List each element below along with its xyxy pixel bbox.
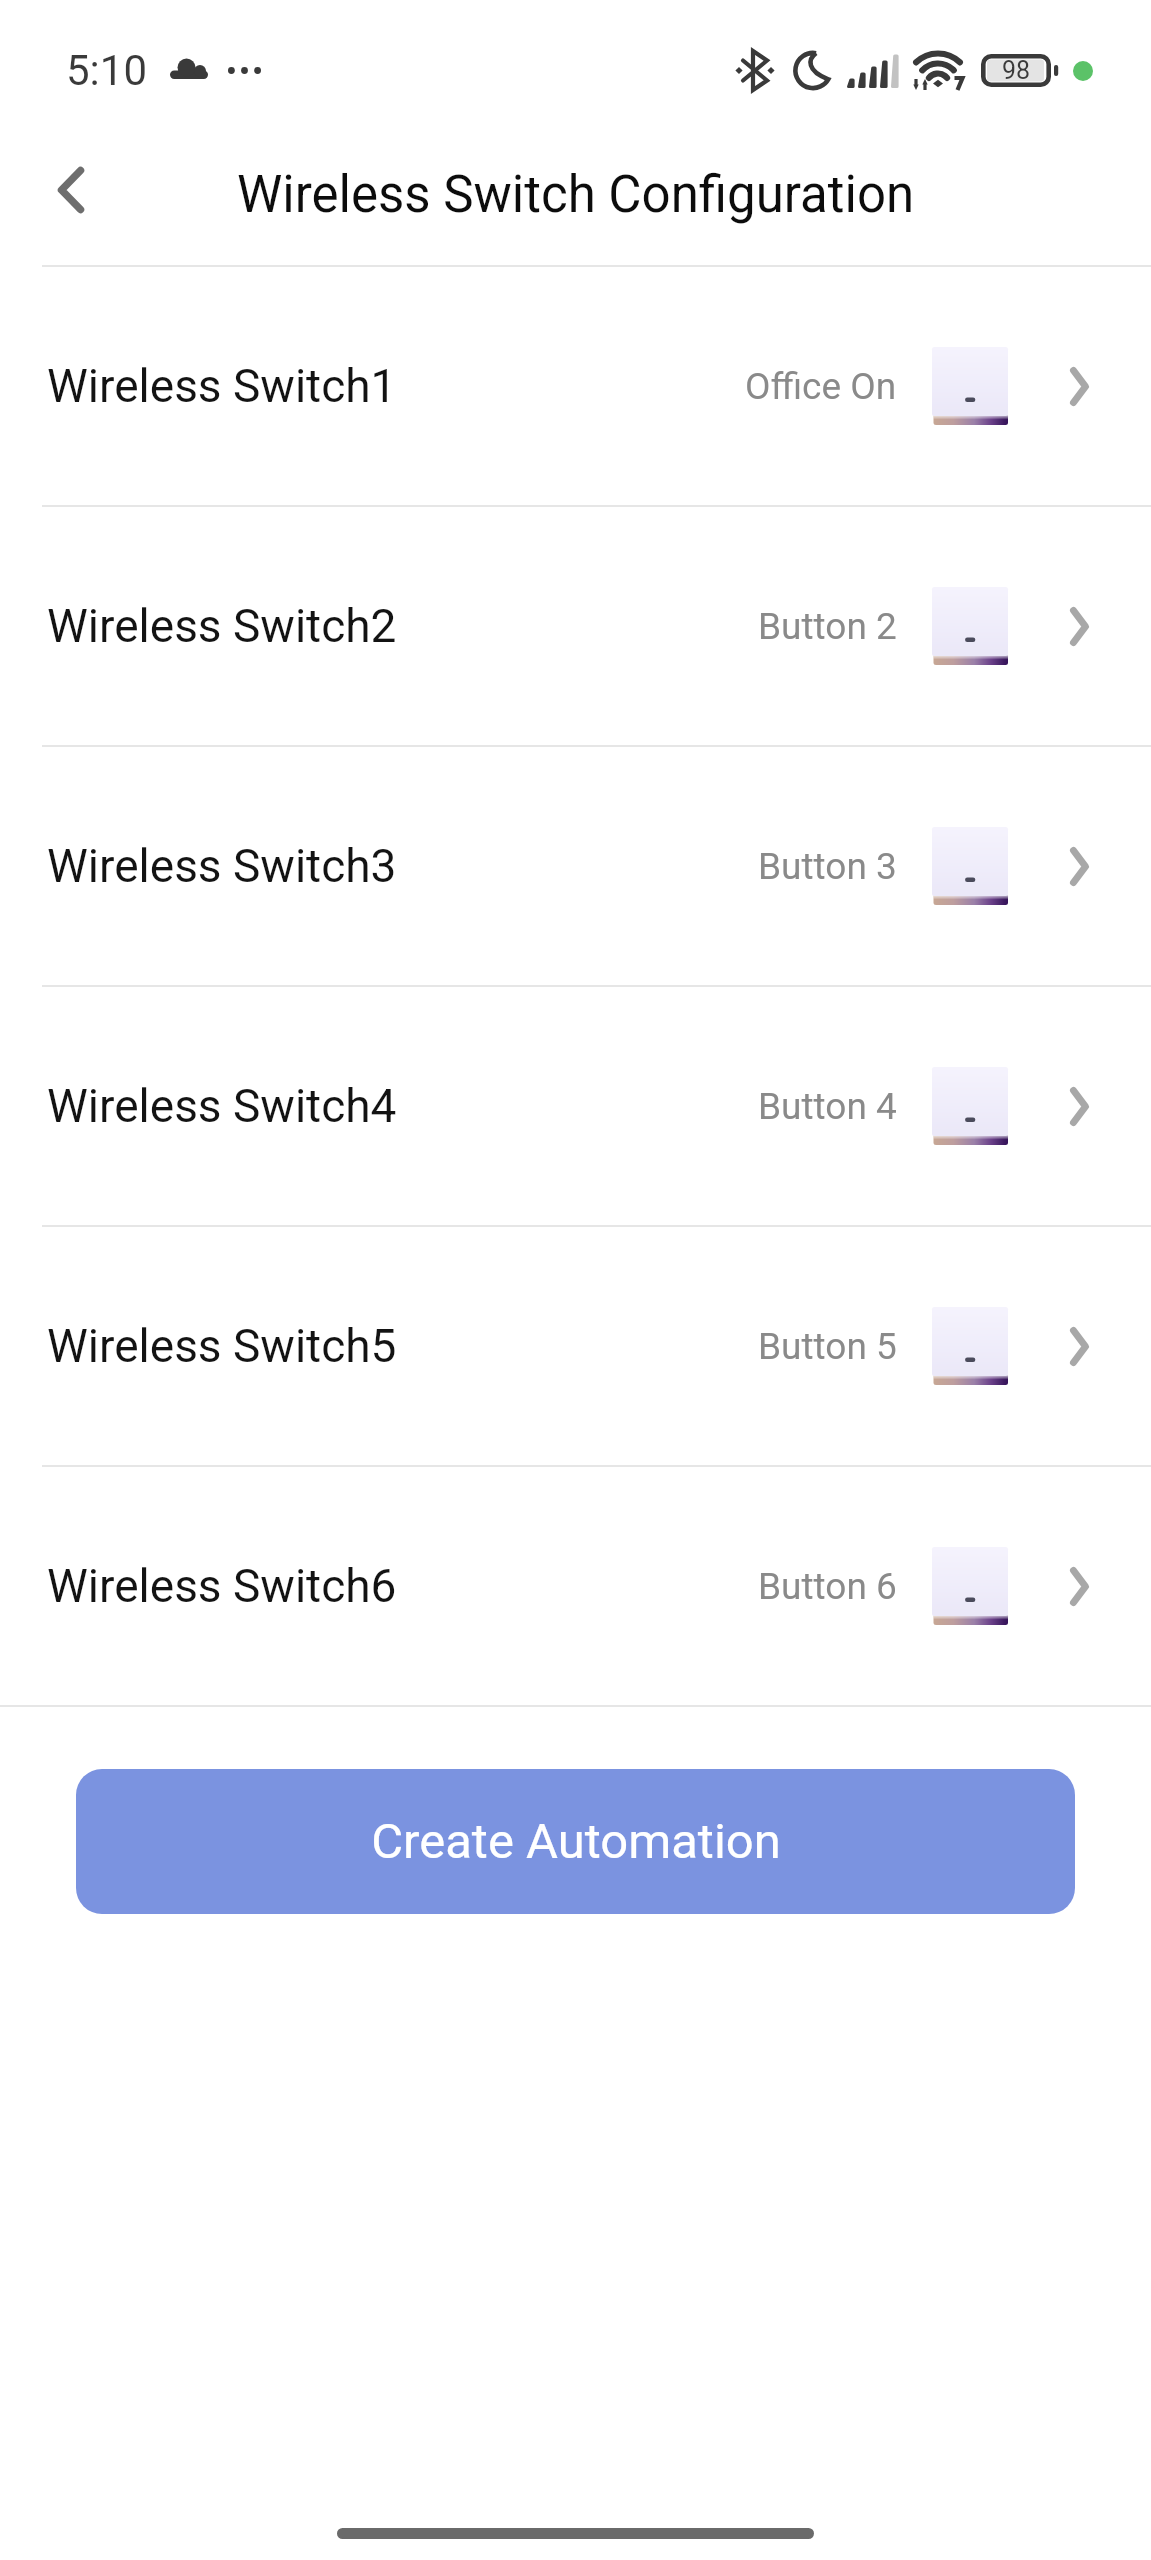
staticText: Office On: [745, 365, 897, 408]
button[interactable]: Wireless Switch1: [0, 267, 1151, 505]
button[interactable]: Back: [26, 145, 116, 235]
staticText: Button 2: [758, 605, 897, 648]
staticText: Wireless Switch6: [47, 1559, 397, 1613]
staticText: Wireless Switch Configuration: [237, 165, 915, 225]
staticText: Wireless Switch3: [47, 839, 397, 893]
staticText: Button 3: [758, 845, 897, 888]
staticText: Create Automation: [371, 1813, 781, 1870]
button[interactable]: Wireless Switch3: [0, 747, 1151, 985]
staticText: 5:10: [66, 46, 147, 95]
button[interactable]: Wireless Switch4: [0, 987, 1151, 1225]
staticText: Wireless Switch4: [47, 1079, 397, 1133]
staticText: Wireless Switch2: [47, 599, 397, 653]
staticText: 98: [1002, 56, 1031, 85]
button[interactable]: Create Automation: [76, 1769, 1075, 1914]
staticText: Wireless Switch5: [47, 1319, 397, 1373]
button[interactable]: Wireless Switch2: [0, 507, 1151, 745]
button[interactable]: Wireless Switch6: [0, 1467, 1151, 1705]
staticText: Button 5: [758, 1325, 897, 1368]
staticText: Wireless Switch1: [47, 359, 397, 413]
button[interactable]: Wireless Switch5: [0, 1227, 1151, 1465]
staticText: Button 6: [758, 1565, 897, 1608]
staticText: Button 4: [758, 1085, 897, 1128]
